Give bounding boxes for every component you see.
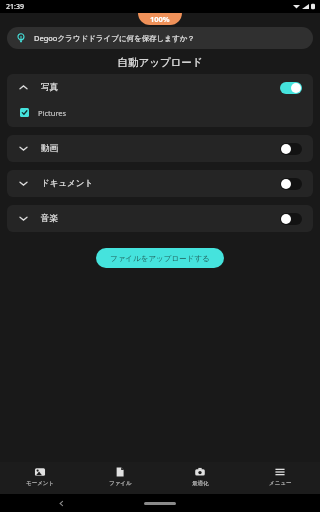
staticText: モーメント bbox=[26, 480, 55, 487]
button[interactable]: ドキュメント bbox=[7, 170, 313, 197]
button[interactable]: 100% bbox=[138, 13, 182, 25]
button[interactable]: メニュー bbox=[240, 462, 320, 494]
button[interactable]: ファイル bbox=[80, 462, 160, 494]
button[interactable]: Toggle off bbox=[280, 178, 302, 190]
button[interactable]: ファイルをアップロードする bbox=[96, 248, 224, 268]
staticText: ファイルをアップロードする bbox=[110, 254, 210, 263]
button[interactable]: Pictures bbox=[7, 101, 313, 124]
staticText: メニュー bbox=[269, 480, 292, 487]
button[interactable]: 動画 bbox=[7, 135, 313, 162]
staticText: 100% bbox=[150, 14, 170, 24]
staticText: ドキュメント bbox=[41, 178, 94, 189]
button[interactable]: モーメント bbox=[0, 462, 80, 494]
button[interactable]: 最適化 bbox=[160, 462, 240, 494]
staticText: 音楽 bbox=[41, 213, 58, 224]
button[interactable]: Toggle off bbox=[280, 213, 302, 225]
staticText: ファイル bbox=[109, 480, 132, 487]
button[interactable]: Degooクラウドドライブに何を保存しますか？ bbox=[7, 27, 313, 49]
button[interactable]: Toggle off bbox=[280, 143, 302, 155]
staticText: Pictures bbox=[38, 108, 67, 118]
staticText: 21:39 bbox=[6, 2, 24, 12]
staticText: 写真 bbox=[41, 82, 58, 93]
button[interactable]: 写真 bbox=[7, 74, 313, 101]
staticText: 最適化 bbox=[192, 480, 209, 487]
staticText: 動画 bbox=[41, 143, 58, 154]
staticText: 自動アップロード bbox=[0, 56, 320, 69]
button[interactable]: 音楽 bbox=[7, 205, 313, 232]
button[interactable]: Toggle on bbox=[280, 82, 302, 94]
staticText: Degooクラウドドライブに何を保存しますか？ bbox=[34, 33, 195, 43]
